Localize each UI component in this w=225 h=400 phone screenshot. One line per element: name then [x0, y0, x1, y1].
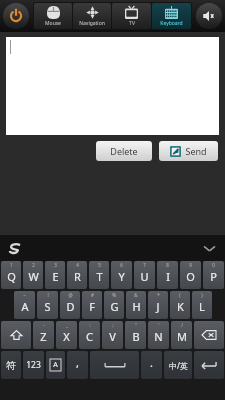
staticText: P: [210, 269, 217, 284]
button[interactable]: ~: [14, 291, 35, 319]
button[interactable]: Power: [3, 3, 29, 29]
staticText: E: [52, 269, 59, 284]
button[interactable]: (: [170, 291, 190, 319]
staticText: ~: [23, 292, 26, 298]
button[interactable]: A: [46, 351, 65, 379]
staticText: (: [179, 292, 181, 298]
staticText: 2: [32, 262, 35, 268]
button[interactable]: ): [192, 291, 212, 319]
staticText: N: [154, 329, 163, 344]
staticText: M: [177, 329, 187, 344]
staticText: W: [28, 269, 39, 284]
other: IME logo: [9, 244, 21, 253]
staticText: ,: [76, 355, 79, 370]
button[interactable]: 符: [1, 351, 21, 379]
button[interactable]: Mute: [196, 3, 222, 29]
staticText: 6: [120, 262, 123, 268]
button[interactable]: 0: [203, 261, 224, 289]
button[interactable]: @: [60, 291, 80, 319]
staticText: U: [140, 269, 149, 284]
staticText: 9: [189, 262, 192, 268]
staticText: S: [44, 299, 51, 314]
button[interactable]: 2: [23, 261, 43, 289]
other: Space: [102, 361, 128, 369]
staticText: V: [109, 329, 116, 344]
button[interactable]: Shift: [1, 321, 31, 349]
staticText: 8: [166, 262, 169, 268]
button[interactable]: 5: [89, 261, 109, 289]
button[interactable]: -: [33, 321, 54, 349]
staticText: Y: [118, 269, 125, 284]
staticText: 1: [10, 262, 13, 268]
button[interactable]: 7: [134, 261, 155, 289]
staticText: D: [66, 299, 75, 314]
staticText: ;: [112, 322, 114, 328]
button[interactable]: Delete: [96, 141, 152, 161]
staticText: @: [68, 292, 73, 298]
button[interactable]: *: [148, 291, 168, 319]
staticText: X: [63, 329, 70, 344]
button[interactable]: 6: [111, 261, 132, 289]
staticText: B: [132, 329, 140, 344]
button[interactable]: .: [141, 351, 162, 379]
staticText: A: [21, 299, 29, 314]
button[interactable]: Mouse: [34, 3, 72, 29]
button[interactable]: _: [56, 321, 77, 349]
button[interactable]: &: [126, 291, 146, 319]
staticText: 5: [98, 262, 101, 268]
staticText: Mouse: [45, 20, 61, 27]
staticText: 3: [54, 262, 57, 268]
staticText: Delete: [110, 145, 138, 157]
button[interactable]: ;: [102, 321, 123, 349]
button[interactable]: 8: [157, 261, 178, 289]
button[interactable]: Navigation: [73, 3, 111, 29]
button[interactable]: Backspace: [194, 321, 224, 349]
staticText: :: [89, 322, 91, 328]
staticText: G: [110, 299, 119, 314]
other: Hide keyboard: [204, 245, 215, 252]
button[interactable]: %: [104, 291, 124, 319]
staticText: ": [135, 322, 137, 328]
button[interactable]: ,: [67, 351, 88, 379]
button[interactable]: 4: [67, 261, 87, 289]
staticText: Send: [185, 145, 207, 157]
button[interactable]: /: [171, 321, 192, 349]
staticText: Navigation: [79, 20, 105, 27]
staticText: O: [186, 269, 195, 284]
staticText: A: [53, 360, 58, 370]
staticText: 4: [76, 262, 79, 268]
staticText: C: [86, 329, 93, 344]
button[interactable]: #: [82, 291, 102, 319]
staticText: K: [177, 299, 184, 314]
button[interactable]: 123: [23, 351, 44, 379]
button[interactable]: TV: [112, 3, 151, 29]
button[interactable]: 中/英: [164, 351, 192, 379]
staticText: Q: [7, 269, 16, 284]
staticText: &: [134, 292, 138, 298]
button[interactable]: :: [79, 321, 100, 349]
staticText: ': [158, 322, 160, 328]
staticText: 符: [6, 359, 16, 372]
button[interactable]: Send: [159, 141, 218, 161]
staticText: R: [74, 269, 81, 284]
button[interactable]: Enter: [194, 351, 224, 379]
button[interactable]: !: [37, 291, 58, 319]
staticText: *: [157, 292, 160, 298]
staticText: %: [112, 292, 116, 298]
staticText: /: [181, 322, 183, 328]
staticText: 123: [26, 359, 41, 371]
button[interactable]: 3: [45, 261, 65, 289]
button[interactable]: Space: [90, 351, 139, 379]
button[interactable]: 9: [180, 261, 201, 289]
staticText: L: [199, 299, 205, 314]
staticText: J: [156, 299, 160, 314]
staticText: 0: [212, 262, 215, 268]
button[interactable]: 1: [1, 261, 21, 289]
staticText: -: [43, 322, 45, 328]
button[interactable]: Keyboard: [152, 3, 191, 29]
button[interactable]: ': [148, 321, 169, 349]
staticText: #: [91, 292, 94, 298]
button[interactable]: ": [125, 321, 146, 349]
staticText: ): [201, 292, 203, 298]
